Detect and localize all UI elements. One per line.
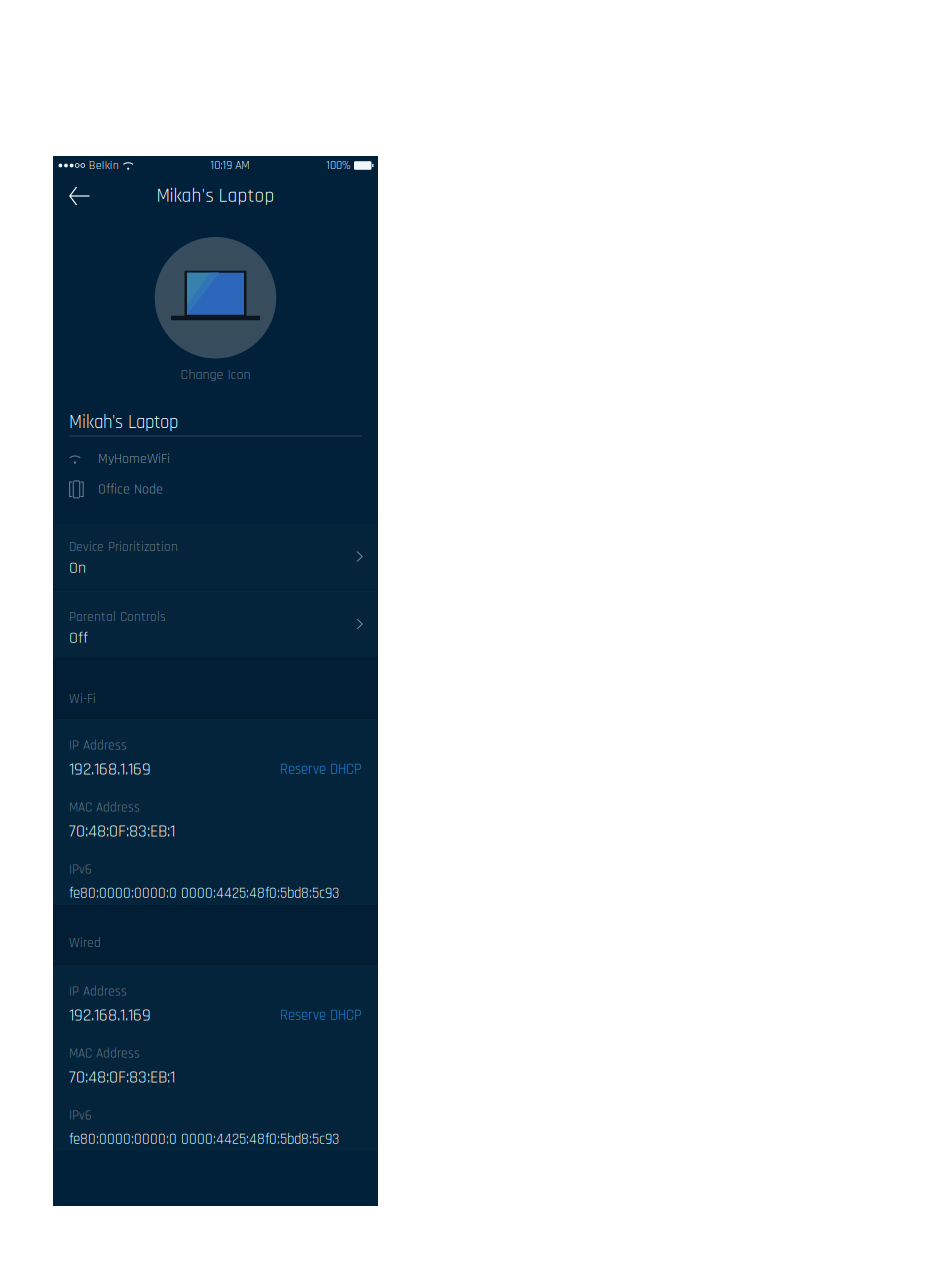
staticText: Change Icon <box>180 366 250 384</box>
staticText: MAC Address <box>69 799 140 816</box>
button[interactable]: Reserve DHCP <box>280 1006 362 1025</box>
staticText: Reserve DHCP <box>280 1006 362 1025</box>
staticText: Device Prioritization <box>69 538 178 555</box>
staticText: IP Address <box>69 983 127 1000</box>
staticText: Wired <box>69 934 101 951</box>
staticText: IP Address <box>69 737 127 754</box>
staticText: Mikah's Laptop <box>69 411 178 434</box>
staticText: Office Node <box>98 481 163 498</box>
button[interactable]: Device Prioritization <box>53 524 378 589</box>
staticText: 70:48:0F:83:EB:1 <box>69 1066 175 1088</box>
staticText: IPv6 <box>69 1107 92 1124</box>
staticText: Off <box>69 628 88 648</box>
staticText: Parental Controls <box>69 608 166 625</box>
button[interactable]: Parental Controls <box>53 590 378 657</box>
staticText: 192.168.1.169 <box>69 1004 151 1026</box>
staticText: On <box>69 558 86 578</box>
staticText: 100% <box>326 158 351 173</box>
staticText: fe80:0000:0000:0 0000:4425:48f0:5bd8:5c9… <box>69 1130 339 1149</box>
staticText: Mikah's Laptop <box>156 184 274 208</box>
staticText: Belkin <box>89 158 119 173</box>
staticText: 70:48:0F:83:EB:1 <box>69 820 175 842</box>
staticText: Reserve DHCP <box>280 760 362 779</box>
staticText: 10:19 AM <box>210 158 249 173</box>
staticText: IPv6 <box>69 861 92 878</box>
staticText: MAC Address <box>69 1045 140 1062</box>
button[interactable]: Reserve DHCP <box>280 760 362 779</box>
staticText: fe80:0000:0000:0 0000:4425:48f0:5bd8:5c9… <box>69 884 339 903</box>
staticText: 192.168.1.169 <box>69 758 151 780</box>
button[interactable]: Change Icon <box>53 367 378 382</box>
staticText: Wi-Fi <box>69 690 96 707</box>
staticText: MyHomeWiFi <box>98 450 170 468</box>
button[interactable]: Back <box>53 174 106 218</box>
